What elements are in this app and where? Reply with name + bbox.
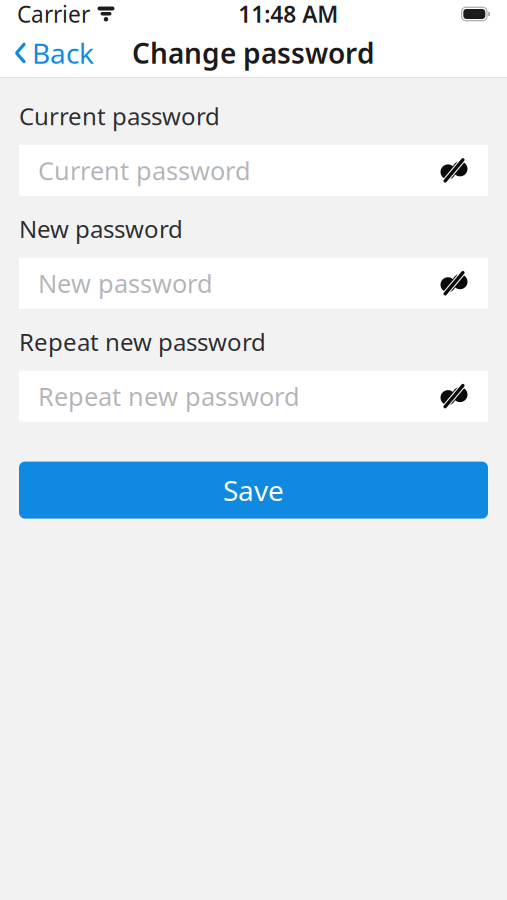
staticText: Repeat new password xyxy=(19,326,266,358)
staticText: Save xyxy=(223,471,284,509)
button[interactable]: Save xyxy=(19,462,488,519)
staticText: 11:48 AM xyxy=(238,0,338,29)
staticText: New password xyxy=(19,213,183,245)
staticText: Repeat new password xyxy=(38,379,300,413)
button[interactable]: Repeat new password xyxy=(19,371,488,422)
staticText: Change password xyxy=(132,34,375,72)
staticText: Carrier xyxy=(17,0,90,29)
staticText: Current password xyxy=(38,154,251,187)
button[interactable]: Back xyxy=(0,28,108,78)
staticText: Current password xyxy=(19,100,220,132)
button[interactable]: New password xyxy=(19,258,488,309)
staticText: New password xyxy=(38,266,213,300)
button[interactable]: Current password xyxy=(19,145,488,196)
staticText: Back xyxy=(32,34,94,72)
